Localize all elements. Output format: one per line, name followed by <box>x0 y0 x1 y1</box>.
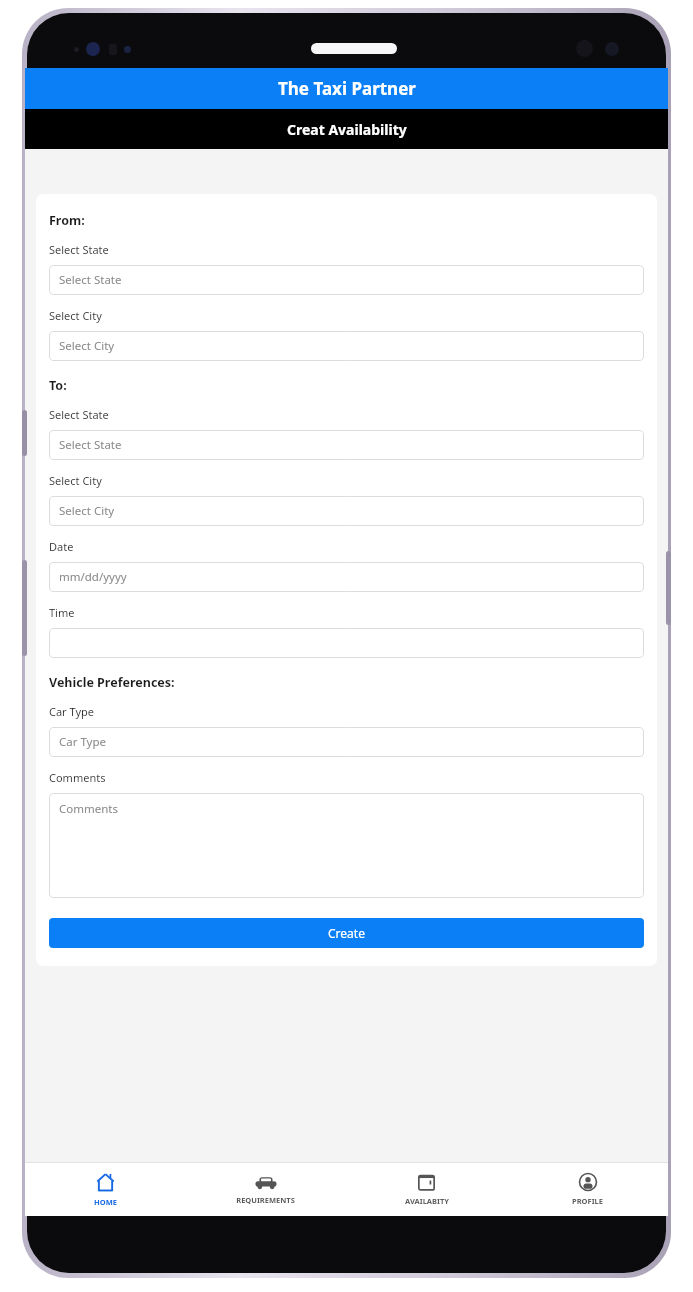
staticText: PROFILE <box>572 1196 603 1206</box>
staticText: From: <box>49 212 85 229</box>
staticText: Comments <box>59 801 118 817</box>
staticText: Select State <box>59 272 122 288</box>
staticText: Select City <box>59 338 115 354</box>
button[interactable]: Select State <box>49 265 644 295</box>
staticText: Select City <box>59 503 115 519</box>
button[interactable]: Select City <box>49 496 644 526</box>
button[interactable]: Create <box>49 918 644 948</box>
staticText: Select City <box>49 308 102 323</box>
staticText: Vehicle Preferences: <box>49 674 175 691</box>
button[interactable]: AVAILABITY <box>346 1168 507 1211</box>
button[interactable]: HOME <box>25 1168 185 1212</box>
other: PROFILE <box>579 1173 597 1191</box>
button[interactable]: PROFILE <box>507 1168 668 1211</box>
staticText: Car Type <box>49 704 95 719</box>
staticText: Car Type <box>59 734 107 750</box>
staticText: Select City <box>49 473 102 488</box>
button[interactable] <box>49 628 644 658</box>
other: AVAILABITY <box>418 1173 435 1191</box>
staticText: Select State <box>49 407 109 422</box>
other: HOME <box>96 1173 115 1192</box>
staticText: HOME <box>94 1197 117 1207</box>
staticText: mm/dd/yyyy <box>59 569 127 585</box>
staticText: Select State <box>49 242 109 257</box>
staticText: Time <box>49 605 75 620</box>
staticText: Creat Availability <box>287 120 407 139</box>
button[interactable]: Select State <box>49 430 644 460</box>
staticText: REQUIREMENTS <box>236 1195 295 1205</box>
staticText: Comments <box>49 770 106 785</box>
button[interactable]: REQUIREMENTS <box>185 1169 346 1210</box>
button[interactable]: Car Type <box>49 727 644 757</box>
other: REQUIREMENTS <box>255 1174 277 1190</box>
staticText: The Taxi Partner <box>278 77 416 100</box>
button[interactable]: Comments <box>49 793 644 898</box>
staticText: To: <box>49 377 67 394</box>
staticText: Gradient Softech <box>346 1203 417 1215</box>
button[interactable]: mm/dd/yyyy <box>49 562 644 592</box>
button[interactable]: Select City <box>49 331 644 361</box>
staticText: AVAILABITY <box>405 1196 449 1206</box>
staticText: Date <box>49 539 74 554</box>
staticText: Create <box>328 925 365 941</box>
staticText: Select State <box>59 437 122 453</box>
